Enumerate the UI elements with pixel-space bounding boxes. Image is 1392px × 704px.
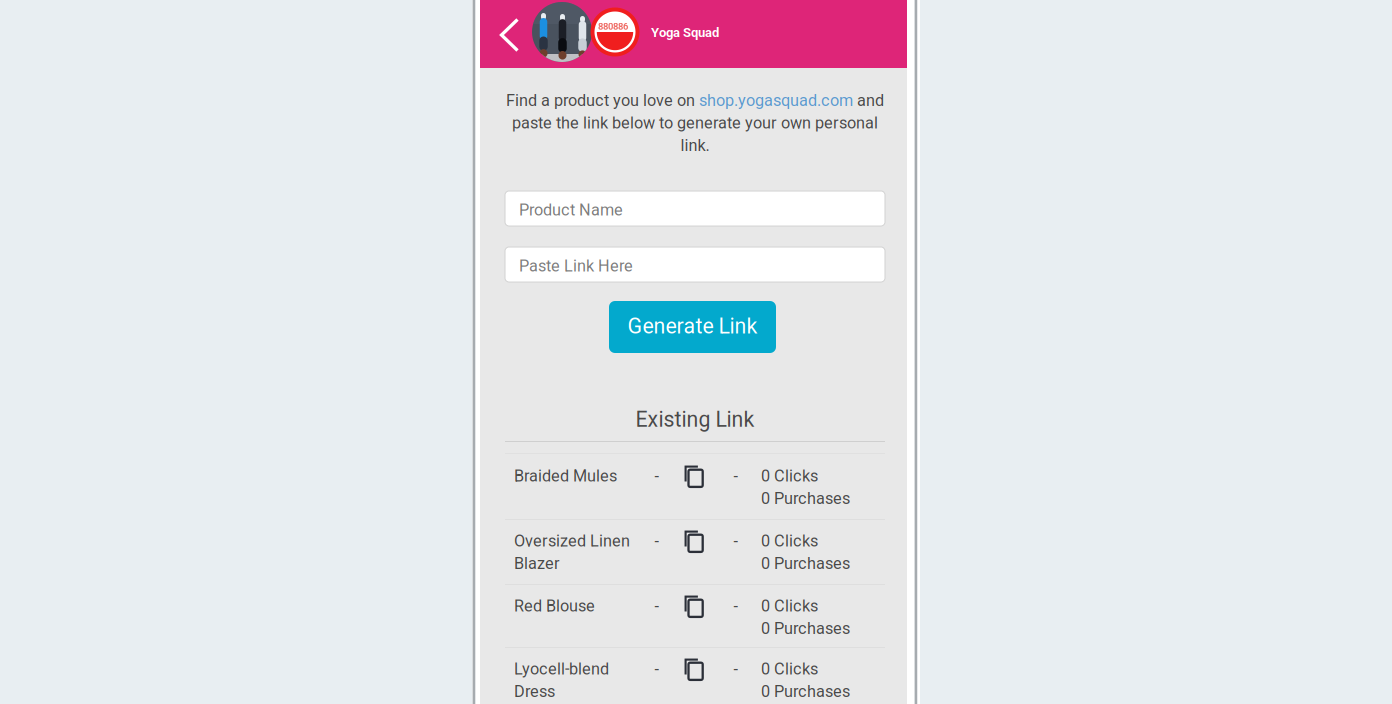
staticText: Dress [514,682,555,701]
button[interactable]: Oversized Linen [505,520,885,584]
button[interactable]: Generate Link [609,301,776,353]
button[interactable]: Copy link for Oversized Linen Blazer [684,530,704,552]
button[interactable]: Copy link for Braided Mules [684,465,704,487]
staticText: 0 Clicks [761,659,818,679]
button[interactable]: Braided Mules [505,455,885,520]
staticText: - [733,532,737,551]
staticText: Find a product you love on [506,91,699,110]
staticText: Blazer [514,554,560,573]
staticText: - [654,467,658,486]
button[interactable]: Brand logo [591,8,639,56]
staticText: Yoga Squad [651,25,719,40]
staticText: Paste Link Here [519,256,633,276]
button[interactable]: Squad photo [532,2,592,62]
staticText: link. [680,136,709,155]
button[interactable]: Back [487,1,531,69]
staticText: and [853,91,884,110]
staticText: Existing Link [635,407,754,432]
button[interactable]: Paste Link Here [505,247,885,282]
button[interactable]: Copy link for Red Blouse [684,595,704,617]
staticText: 0 Purchases [761,682,850,701]
staticText: Generate Link [627,314,757,339]
button[interactable]: Product Name [505,191,885,226]
button[interactable]: Copy link for Lyocell-blend Dress [684,658,704,680]
staticText: 880886 [598,21,628,32]
staticText: paste the link below to generate your ow… [512,113,878,133]
staticText: 0 Purchases [761,554,850,573]
staticText: - [733,660,737,679]
button[interactable]: Lyocell-blend [505,648,885,704]
staticText: Red Blouse [514,596,595,616]
staticText: - [654,660,658,679]
staticText: - [733,597,737,616]
staticText: 0 Purchases [761,619,850,638]
staticText: - [654,532,658,551]
staticText: shop.yogasquad.com [699,91,853,110]
staticText: Oversized Linen [514,531,630,551]
staticText: - [733,467,737,486]
button[interactable]: Red Blouse [505,585,885,647]
staticText: Braided Mules [514,466,617,486]
button[interactable]: shop.yogasquad.com [699,91,853,110]
staticText: 0 Clicks [761,531,818,551]
staticText: 0 Clicks [761,596,818,616]
staticText: - [654,597,658,616]
staticText: 0 Purchases [761,489,850,508]
staticText: 0 Clicks [761,466,818,486]
staticText: Lyocell-blend [514,659,609,679]
staticText: Product Name [519,200,623,220]
